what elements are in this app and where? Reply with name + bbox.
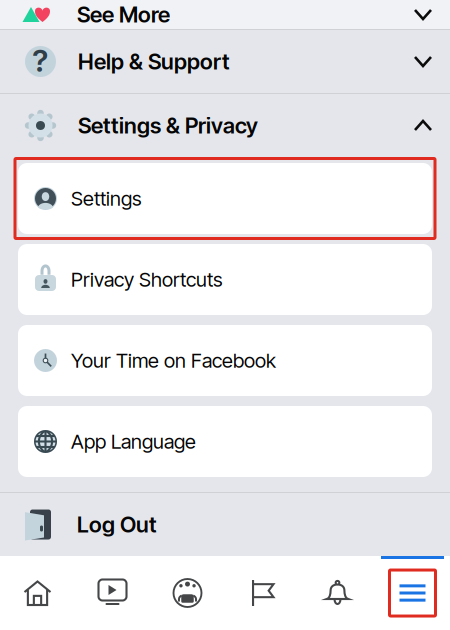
staticText: Privacy Shortcuts	[71, 267, 223, 292]
button[interactable]: Privacy Shortcuts	[18, 244, 432, 315]
button[interactable]: Your Time on Facebook	[18, 325, 432, 396]
button[interactable]: Menu	[389, 570, 435, 616]
button[interactable]: Log Out	[0, 493, 450, 556]
staticText: Settings	[71, 186, 142, 211]
staticText: Settings & Privacy	[78, 112, 258, 139]
staticText: Your Time on Facebook	[71, 348, 276, 373]
staticText: See More	[77, 1, 170, 28]
button[interactable]: App Language	[18, 406, 432, 477]
button[interactable]: ?	[0, 30, 450, 93]
button[interactable]: Settings	[18, 163, 432, 234]
staticText: ?	[32, 42, 48, 79]
button[interactable]: See More	[0, 0, 450, 29]
staticText: App Language	[71, 429, 196, 454]
staticText: Help & Support	[78, 48, 230, 75]
button[interactable]: Watch	[75, 556, 150, 630]
button[interactable]: Marketplace	[225, 556, 300, 630]
button[interactable]: Settings & Privacy	[0, 94, 450, 157]
button[interactable]: Notifications	[300, 556, 375, 630]
button[interactable]: Groups	[150, 556, 225, 630]
button[interactable]: Home	[0, 556, 75, 630]
staticText: Log Out	[77, 511, 157, 538]
